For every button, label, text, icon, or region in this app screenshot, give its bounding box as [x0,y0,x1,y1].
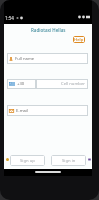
button[interactable]: More [88,158,91,161]
button[interactable]: Cell number [36,79,88,89]
staticText: Radiotaxi Hellas [31,27,66,33]
staticText: Sign up [20,158,35,164]
button[interactable]: +30 [7,79,36,89]
staticText: E-mail [16,108,29,114]
staticText: Sign in [62,158,76,164]
staticText: 1:54 [5,15,14,21]
staticText: +30 [17,81,25,87]
button[interactable]: E-mail [7,105,88,116]
button[interactable]: Full name [7,53,88,64]
button[interactable]: Help [73,36,85,43]
button[interactable]: Sign in [51,155,86,166]
button[interactable]: Info [6,158,9,161]
staticText: Help [74,37,84,43]
staticText: Cell number [61,81,86,87]
button[interactable]: Sign up [10,155,45,166]
staticText: Full name [15,56,35,62]
